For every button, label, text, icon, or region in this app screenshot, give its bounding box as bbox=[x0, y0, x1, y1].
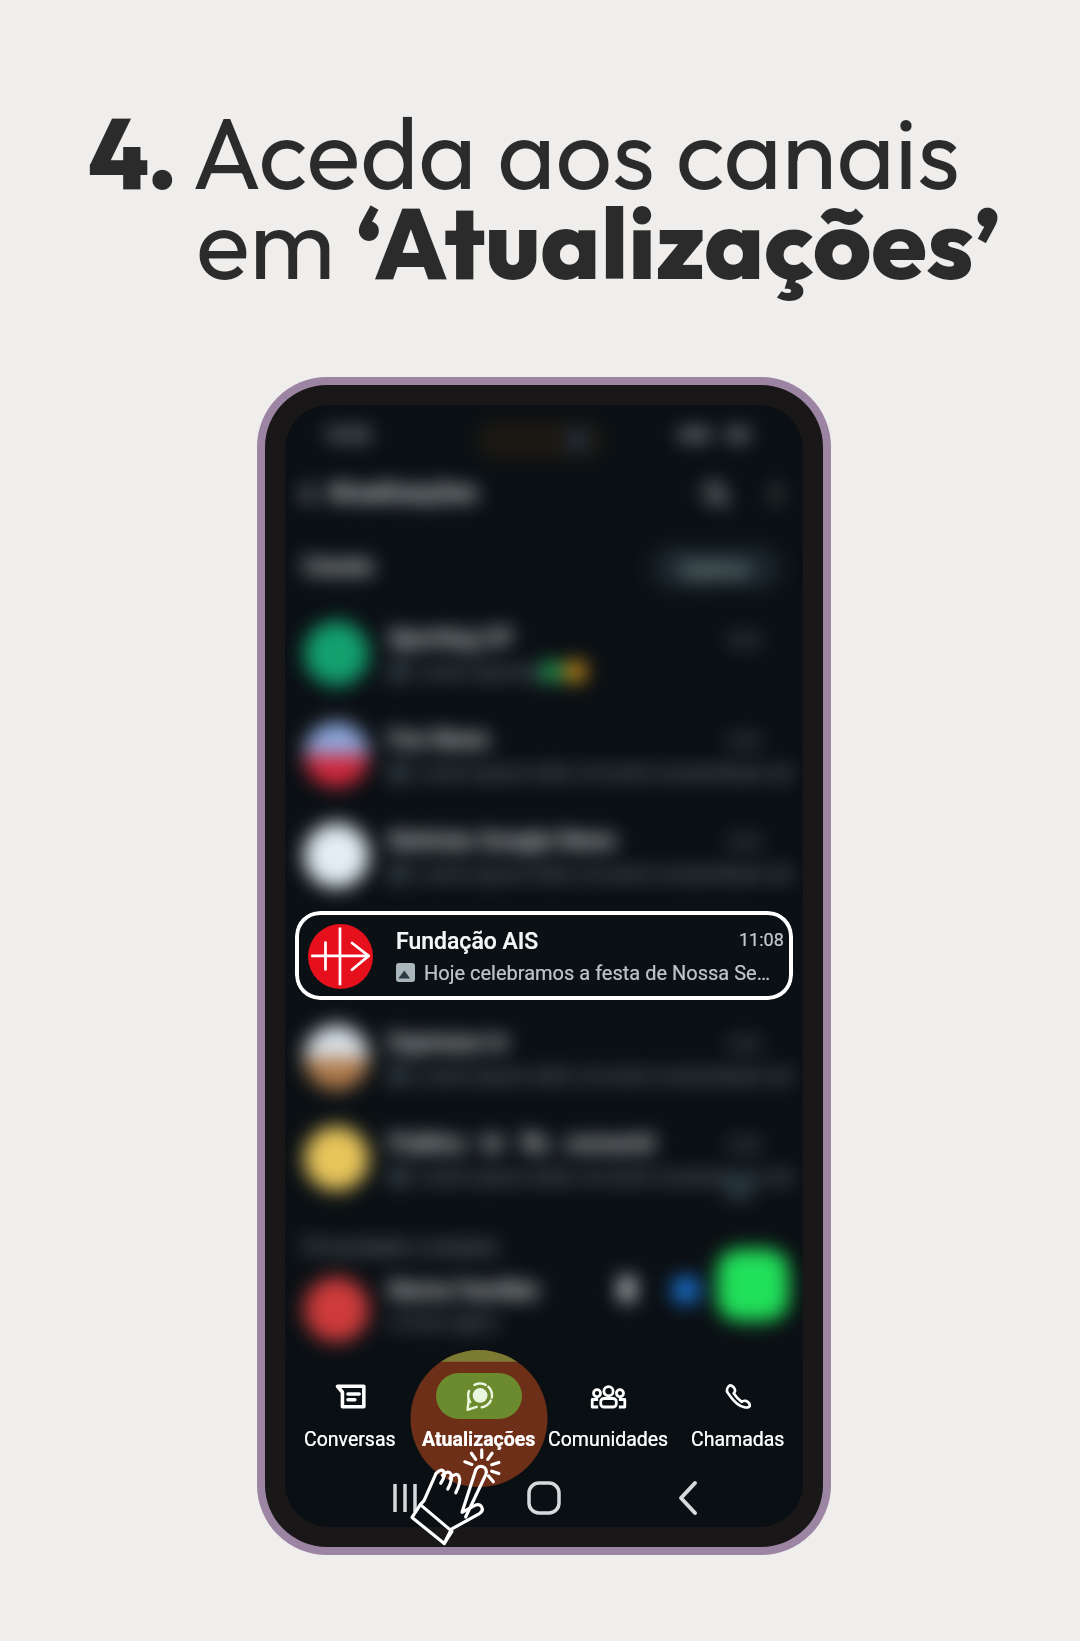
staticText: Lorem ipsum dolor sit amet consectetuer … bbox=[417, 761, 791, 783]
staticText: Explorar bbox=[681, 557, 751, 579]
staticText: A tocar agora bbox=[389, 1311, 497, 1332]
button[interactable]: Atualizações bbox=[414, 1362, 543, 1472]
staticText: Privacidade e estados bbox=[303, 1235, 499, 1258]
button[interactable]: Comunidades bbox=[543, 1362, 673, 1472]
staticText: ●●● bbox=[679, 427, 711, 441]
staticText: Atualizações bbox=[327, 477, 478, 507]
staticText: Expresso tv bbox=[389, 1029, 509, 1056]
button[interactable]: Conversas bbox=[285, 1362, 414, 1472]
staticText: Lorem ipsum dolor sit amet consectetuer … bbox=[417, 1064, 791, 1086]
staticText: Canais bbox=[303, 553, 374, 580]
staticText: Aceda aos canais bbox=[192, 89, 960, 215]
staticText: Noticias Google News bbox=[389, 827, 616, 854]
staticText: 4. bbox=[88, 89, 178, 215]
staticText: Fox News bbox=[389, 726, 490, 753]
button[interactable]: Fundação AIS bbox=[295, 911, 793, 1000]
staticText: Lorem ipsum dolor sit amet consectetuer … bbox=[417, 1165, 791, 1187]
other: Tap Atualizações bbox=[408, 1457, 496, 1550]
staticText: Hoje celebramos a festa de Nossa Se… bbox=[424, 961, 771, 984]
staticText: Lorem ipsumipsum bbox=[417, 660, 581, 682]
staticText: Chamadas bbox=[691, 1428, 785, 1451]
staticText: Atualizações bbox=[422, 1428, 536, 1451]
button[interactable]: Chamadas bbox=[673, 1362, 803, 1472]
staticText: Fundação AIS bbox=[396, 928, 539, 955]
staticText: ‘Atualizações’ bbox=[356, 179, 1001, 305]
staticText: Conversas bbox=[304, 1428, 396, 1451]
staticText: Nome Familiar bbox=[389, 1277, 540, 1304]
staticText: 10:30 bbox=[324, 424, 370, 445]
staticText: 11:08 bbox=[739, 929, 784, 950]
staticText: Sporting CP bbox=[389, 625, 513, 652]
staticText: ▮▮▮ bbox=[727, 426, 749, 441]
staticText: Publico br fla comunid bbox=[389, 1130, 655, 1157]
staticText: Comunidades bbox=[548, 1428, 669, 1451]
staticText: em bbox=[196, 179, 356, 305]
